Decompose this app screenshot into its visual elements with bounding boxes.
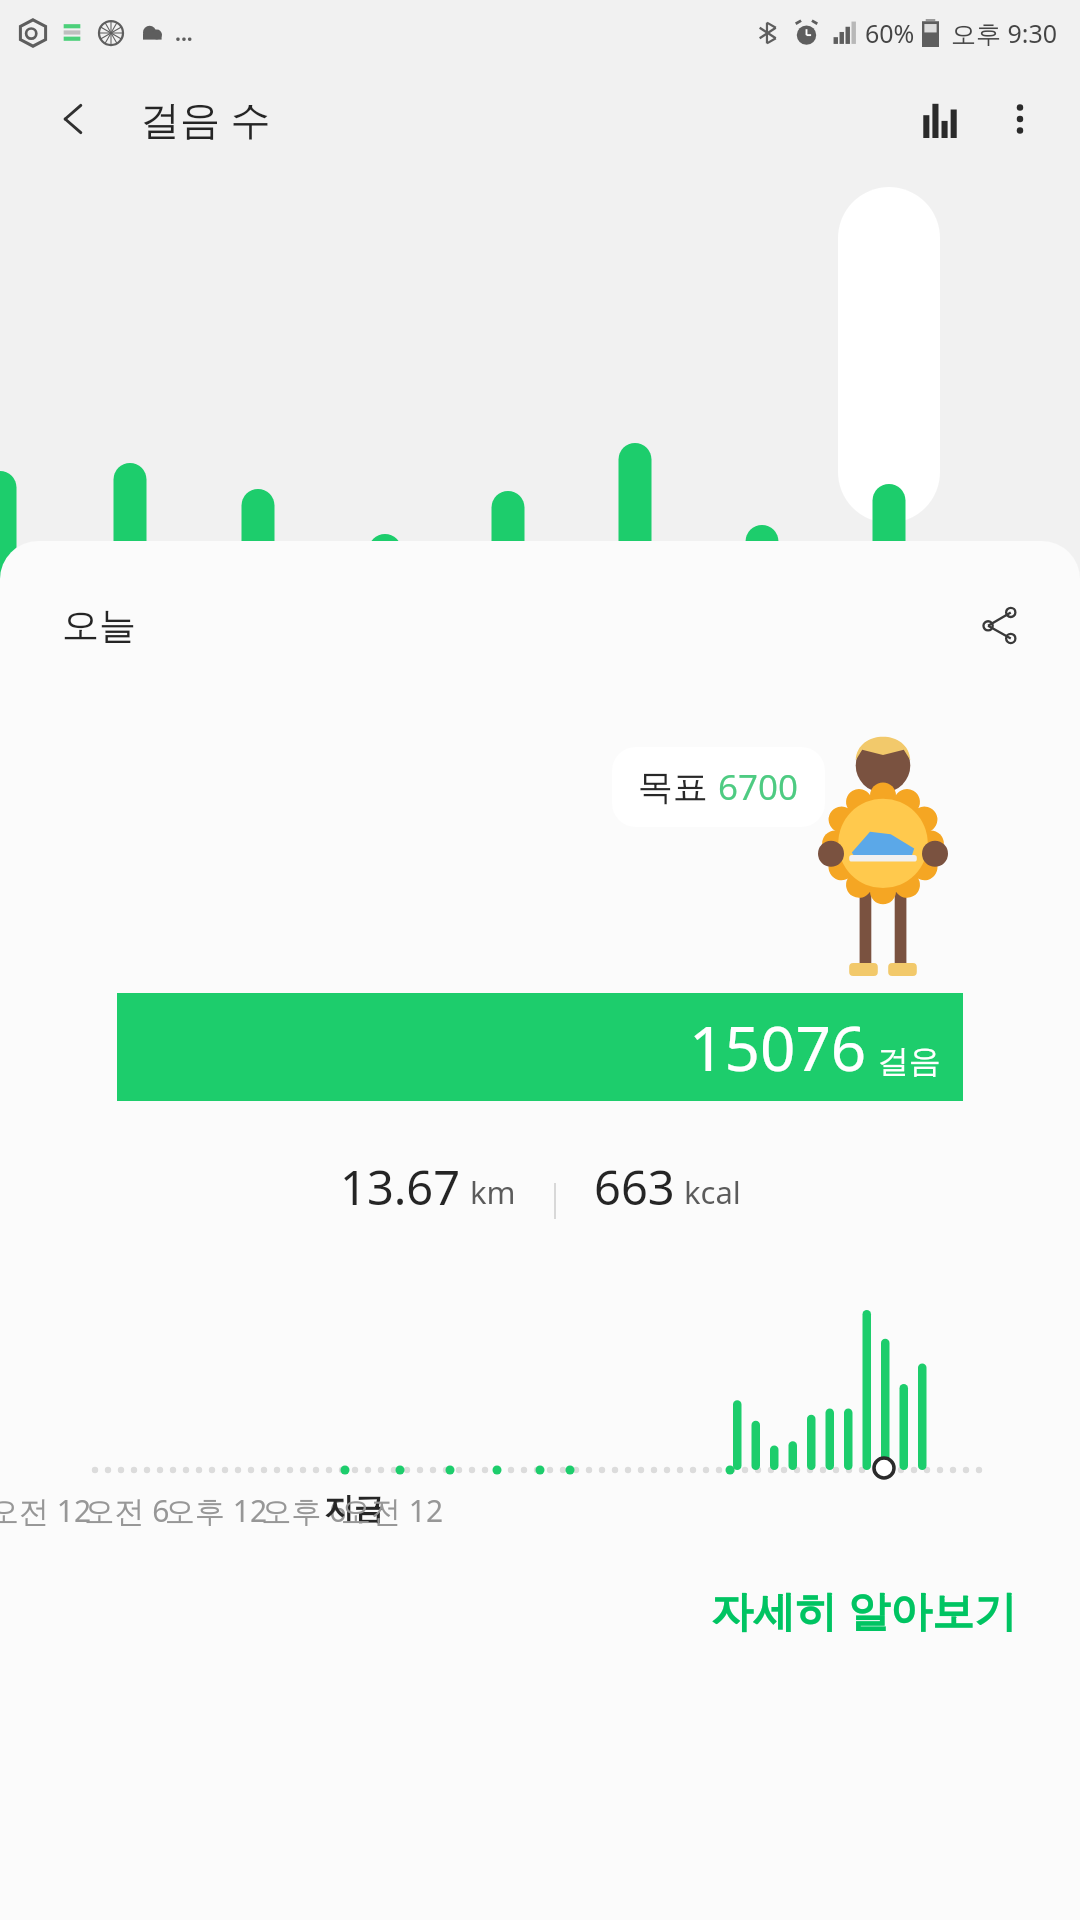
button[interactable]: Share bbox=[963, 589, 1035, 661]
staticText: 목표 bbox=[638, 765, 708, 809]
staticText: 오전 12 bbox=[322, 1490, 462, 1531]
staticText: km bbox=[470, 1171, 516, 1213]
staticText: kcal bbox=[684, 1171, 741, 1213]
staticText: 663 bbox=[594, 1155, 675, 1219]
staticText: 60% bbox=[865, 16, 915, 50]
staticText: 걸음 bbox=[877, 1041, 941, 1081]
button[interactable] bbox=[838, 187, 940, 523]
staticText: 13.67 bbox=[340, 1155, 461, 1219]
staticText: ... bbox=[175, 19, 193, 48]
button[interactable]: More options bbox=[980, 79, 1060, 159]
button[interactable]: 자세히 알아보기 bbox=[705, 1573, 1022, 1646]
staticText: 오후 9:30 bbox=[951, 16, 1058, 50]
staticText: 6700 bbox=[718, 763, 799, 811]
staticText: 오전 6 bbox=[57, 1490, 197, 1531]
button[interactable]: Back bbox=[42, 87, 106, 151]
staticText: 오후 6 bbox=[234, 1490, 374, 1531]
button[interactable]: Chart bbox=[900, 79, 980, 159]
staticText: 지금 bbox=[284, 1490, 424, 1528]
staticText: 오늘 bbox=[62, 602, 136, 649]
staticText: 오후 12 bbox=[146, 1490, 286, 1531]
staticText: 15076 bbox=[689, 1005, 867, 1089]
staticText: 걸음 수 bbox=[140, 91, 271, 146]
staticText: 자세히 알아보기 bbox=[711, 1581, 1016, 1638]
button[interactable]: 15076 bbox=[117, 993, 963, 1101]
staticText: 오전 12 bbox=[0, 1490, 110, 1531]
